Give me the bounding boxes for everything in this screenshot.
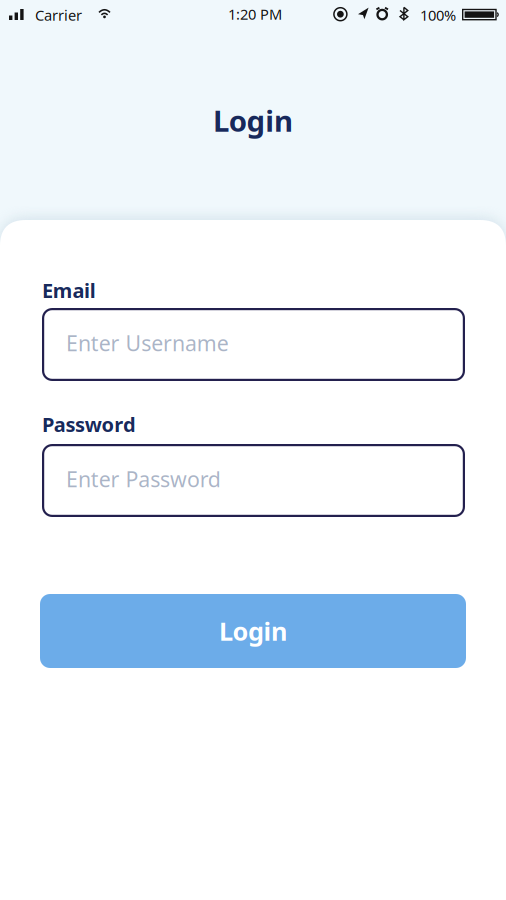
staticText: Enter Password [66, 465, 221, 493]
staticText: Password [42, 411, 136, 438]
button[interactable]: Enter Password [42, 444, 465, 517]
staticText: Login [213, 101, 293, 140]
button[interactable]: Enter Username [42, 308, 465, 381]
staticText: 100% [420, 5, 456, 25]
staticText: Login [219, 614, 287, 648]
button[interactable]: Login [40, 594, 466, 668]
staticText: Enter Username [66, 329, 229, 357]
staticText: Carrier [35, 5, 82, 25]
staticText: Email [42, 277, 96, 304]
staticText: 1:20 PM [228, 4, 282, 24]
